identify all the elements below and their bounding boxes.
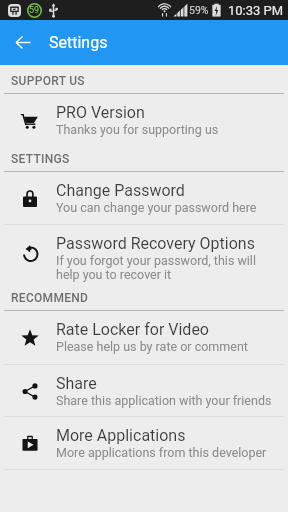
button[interactable]: Share xyxy=(0,365,288,416)
button[interactable]: Change Password xyxy=(0,172,288,224)
staticText: PRO Version xyxy=(56,103,145,122)
staticText: SETTINGS xyxy=(11,152,70,166)
staticText: More Applications xyxy=(56,426,186,445)
staticText: 59% xyxy=(189,4,209,16)
staticText: Please help us by rate or comment xyxy=(56,339,248,354)
staticText: If you forgot your password, this will h… xyxy=(56,253,276,283)
staticText: Change Password xyxy=(56,181,185,200)
staticText: Share xyxy=(56,374,97,393)
staticText: 10:33 PM xyxy=(228,3,284,18)
button[interactable]: Password Recovery Options xyxy=(0,225,288,285)
staticText: RECOMMEND xyxy=(11,291,89,305)
staticText: More applications from this developer xyxy=(56,445,267,460)
button[interactable]: Rate Locker for Video xyxy=(0,311,288,364)
button[interactable]: PRO Version xyxy=(0,94,288,146)
staticText: You can change your password here xyxy=(56,200,257,215)
staticText: Share this application with your friends xyxy=(56,393,272,408)
staticText: Password Recovery Options xyxy=(56,234,255,253)
staticText: SUPPORT US xyxy=(11,74,85,88)
button[interactable]: More Applications xyxy=(0,417,288,469)
staticText: Thanks you for supporting us xyxy=(56,122,219,137)
staticText: Rate Locker for Video xyxy=(56,320,209,339)
button[interactable]: Back xyxy=(0,20,45,65)
staticText: Settings xyxy=(49,33,108,52)
staticText: 59 xyxy=(29,5,40,16)
